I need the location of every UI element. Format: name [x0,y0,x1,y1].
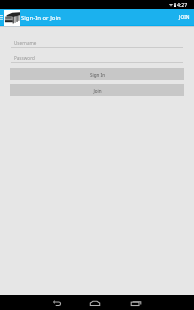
staticText: Sign-In or Join [21,14,61,22]
button[interactable]: Back [38,295,76,310]
button[interactable]: Home [76,295,114,310]
button[interactable]: Recents [117,295,155,310]
button[interactable]: Open navigation [0,9,20,26]
button[interactable]: Sign In [10,68,184,80]
button[interactable]: Password [11,55,183,63]
button[interactable]: JOIN [173,9,194,26]
staticText: Password [14,55,35,61]
button[interactable]: Username [11,40,183,48]
staticText: Username [14,40,37,46]
button[interactable]: Join [10,84,184,96]
staticText: 4:27 [177,1,188,8]
staticText: Join [93,88,102,94]
staticText: JOIN [179,14,190,21]
staticText: Sign In [90,72,105,78]
